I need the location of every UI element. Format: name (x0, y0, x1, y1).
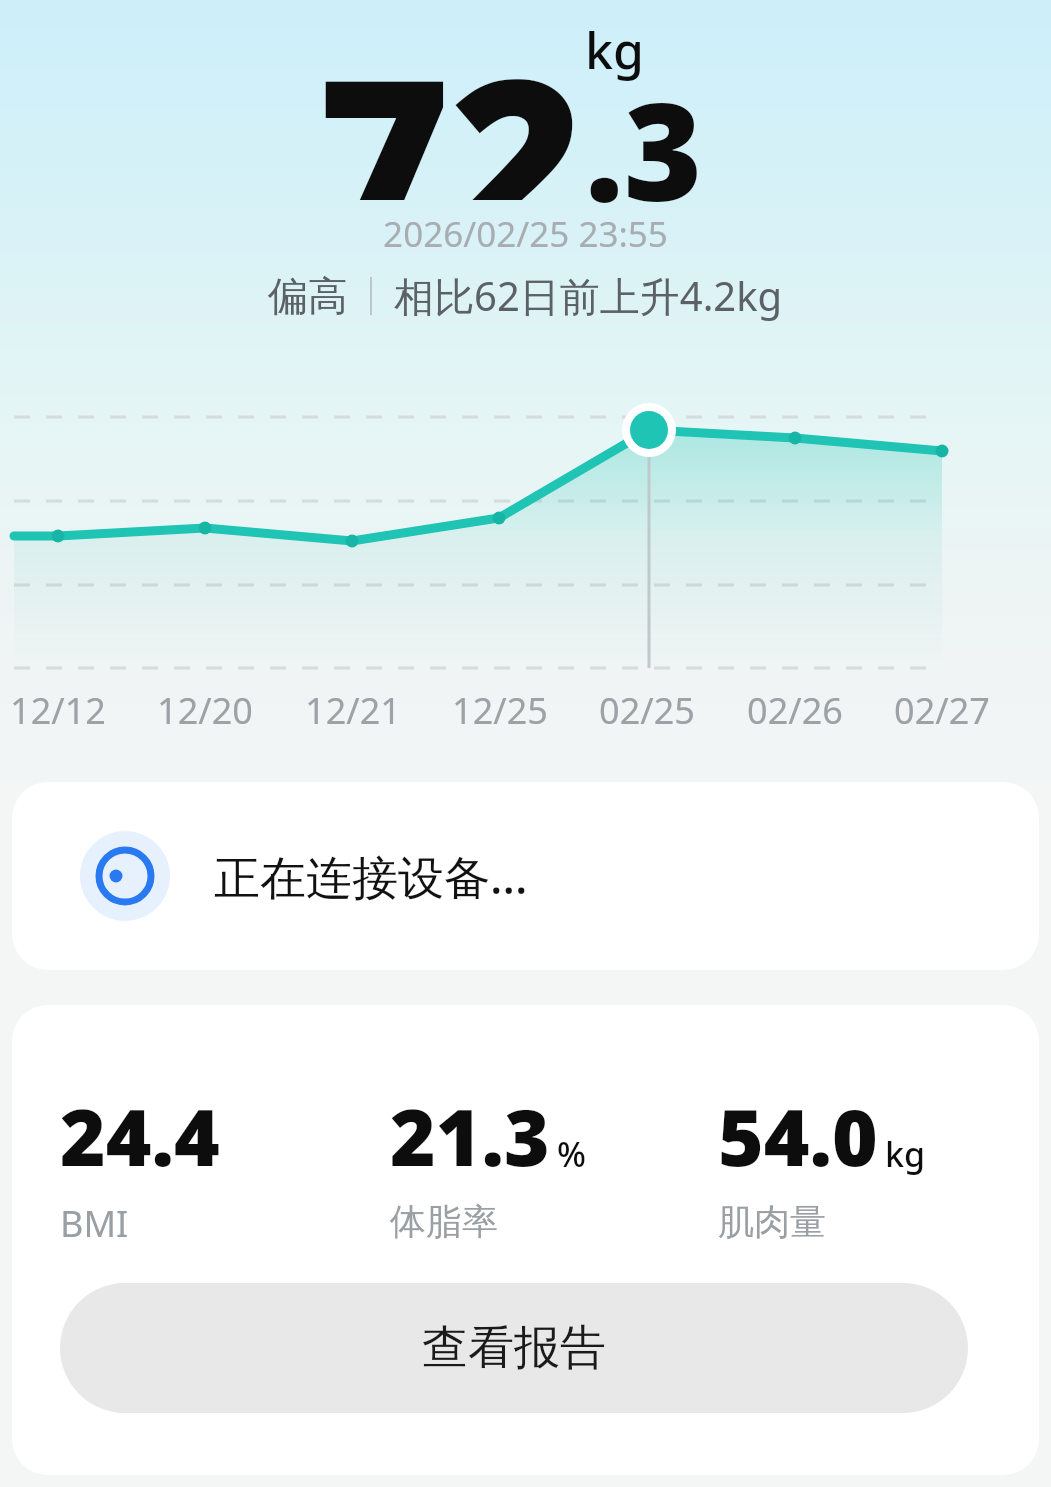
staticText: 02/26 (735, 686, 855, 735)
staticText: kg (885, 1131, 926, 1177)
staticText: 54.0 (718, 1083, 878, 1189)
button[interactable]: 查看报告 (60, 1283, 968, 1413)
staticText: 02/27 (882, 686, 1002, 735)
staticText: 24.4 (60, 1083, 220, 1189)
button[interactable]: 正在连接设备... (12, 782, 1039, 970)
staticText: 查看报告 (422, 1319, 606, 1377)
staticText: 72 (317, 0, 585, 200)
staticText: BMI (60, 1199, 129, 1248)
staticText: 偏高 (268, 271, 348, 321)
staticText: 12/21 (293, 686, 413, 735)
staticText: 12/25 (440, 686, 560, 735)
staticText: 02/25 (587, 686, 707, 735)
staticText: kg (585, 16, 644, 84)
staticText: 12/20 (145, 686, 265, 735)
staticText: .3 (585, 58, 703, 241)
staticText: % (557, 1131, 586, 1177)
staticText: 21.3 (390, 1083, 550, 1189)
staticText: 体脂率 (390, 1199, 498, 1244)
staticText: 相比62日前上升4.2kg (394, 268, 783, 323)
staticText: 正在连接设备... (214, 845, 528, 908)
staticText: 肌肉量 (718, 1199, 826, 1244)
staticText: 2026/02/25 23:55 (383, 210, 668, 258)
staticText: 12/12 (0, 686, 118, 735)
